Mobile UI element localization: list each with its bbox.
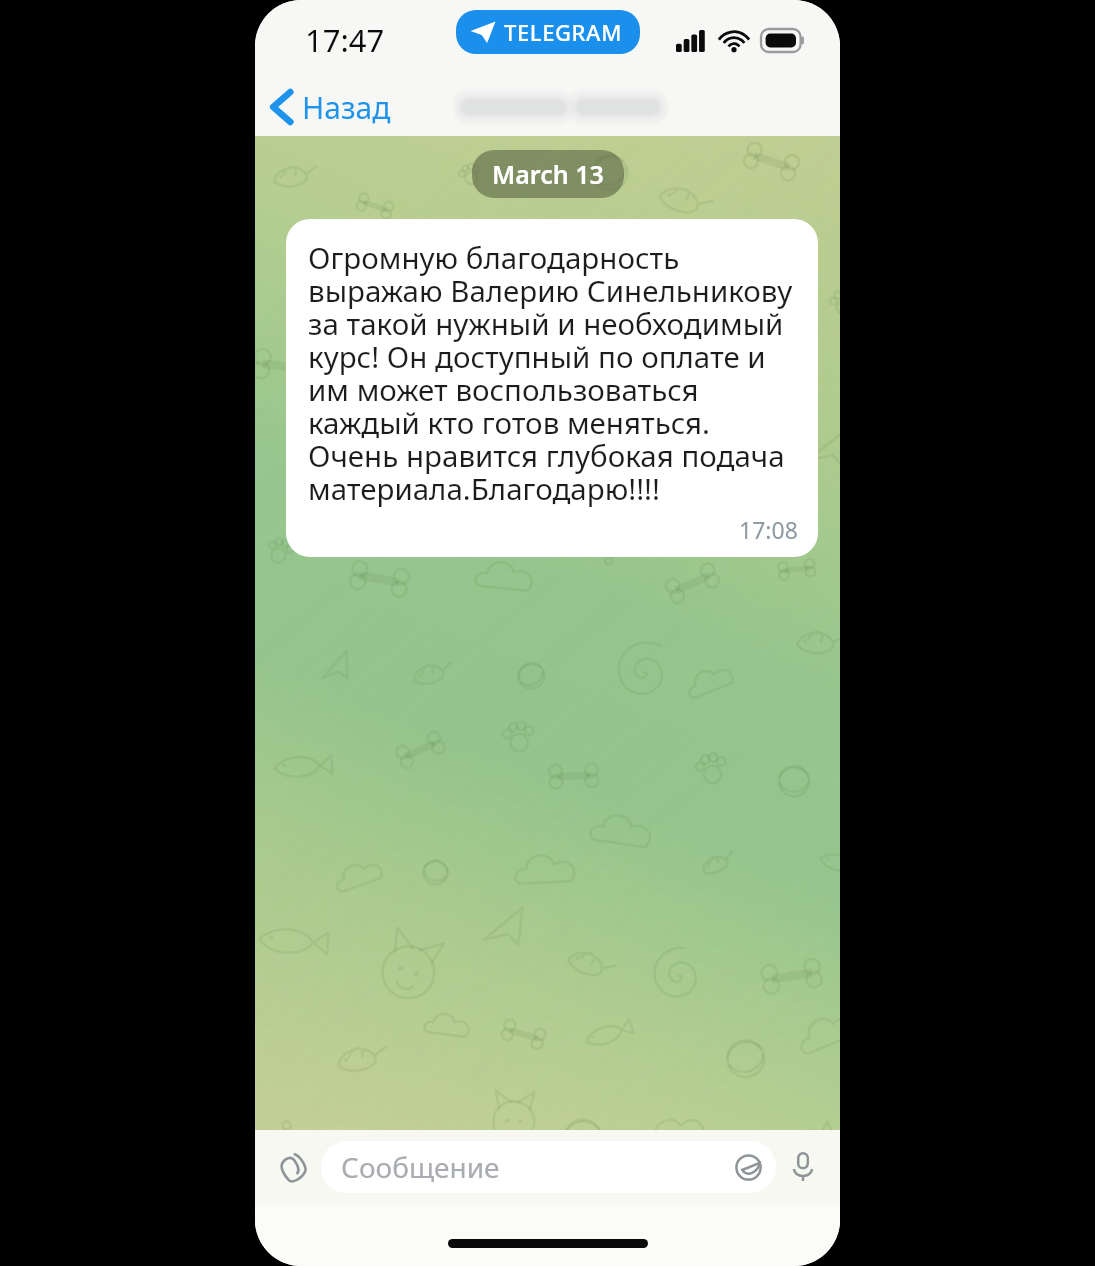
button[interactable]: Назад — [255, 78, 401, 136]
button[interactable]: Voice message — [776, 1140, 830, 1194]
button[interactable]: Огромную благодарность выражаю Валерию С… — [286, 219, 818, 557]
staticText: March 13 — [492, 157, 604, 191]
button[interactable]: March 13 — [472, 150, 624, 198]
staticText: Сообщение — [341, 1148, 500, 1186]
staticText: 17:47 — [305, 19, 385, 61]
staticText: 17:08 — [739, 514, 798, 545]
button[interactable]: Stickers — [726, 1145, 770, 1189]
staticText: Огромную благодарность выражаю Валерию С… — [308, 237, 798, 508]
button[interactable]: Сообщение — [321, 1141, 776, 1193]
button[interactable]: TELEGRAM — [456, 10, 640, 54]
button[interactable]: Attach — [269, 1143, 317, 1191]
staticText: TELEGRAM — [504, 17, 622, 47]
staticText: Назад — [302, 87, 391, 128]
